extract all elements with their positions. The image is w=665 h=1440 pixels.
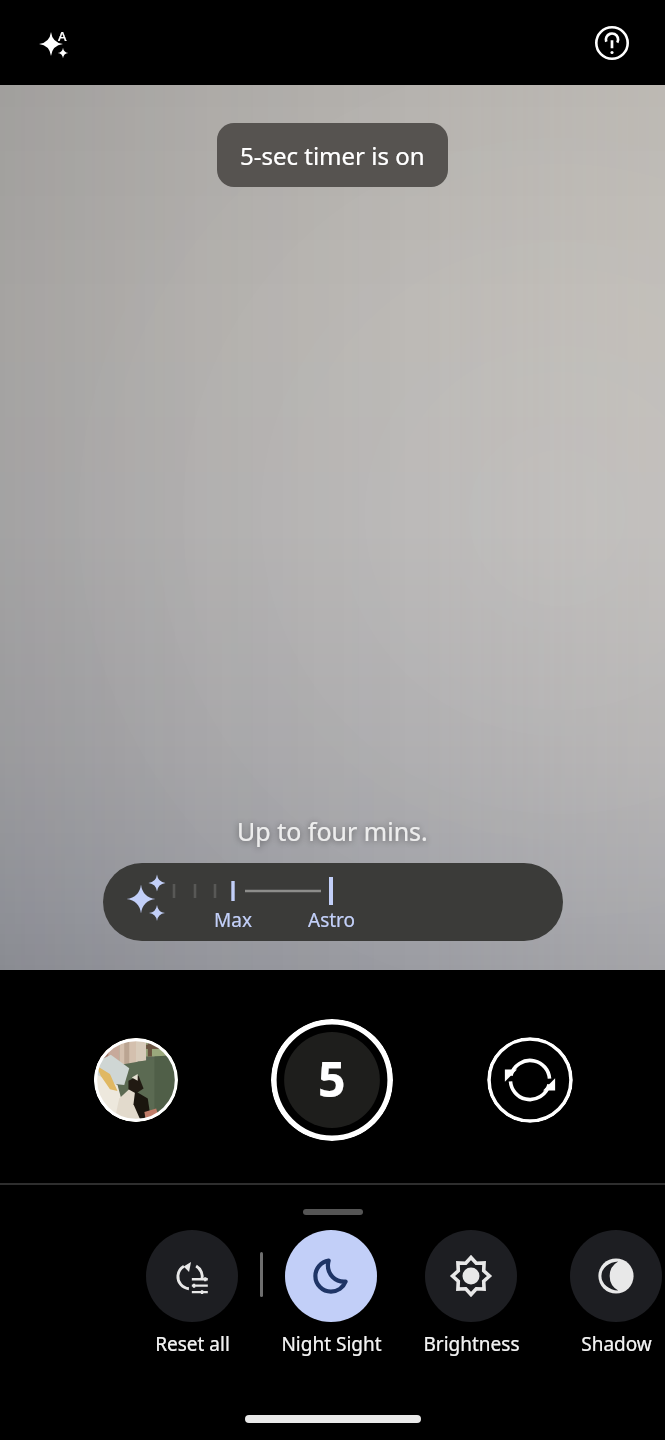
staticText: Brightness: [423, 1331, 520, 1357]
staticText: 5-sec timer is on: [240, 139, 425, 172]
staticText: Up to four mins.: [237, 814, 428, 848]
staticText: Night Sight: [281, 1331, 382, 1357]
button[interactable]: Help: [586, 17, 638, 69]
button[interactable]: Switch camera: [487, 1037, 573, 1123]
staticText: Shadow: [581, 1331, 652, 1357]
button[interactable]: Photo gallery: [94, 1038, 178, 1122]
button[interactable]: [425, 1230, 517, 1322]
staticText: A: [58, 27, 67, 45]
button[interactable]: Night Sight auto: [21, 13, 81, 73]
button[interactable]: Shutter: [271, 1019, 393, 1141]
staticText: Max: [214, 907, 252, 933]
button[interactable]: Max: [103, 863, 563, 941]
staticText: Reset all: [155, 1331, 230, 1357]
button[interactable]: [285, 1230, 377, 1322]
button[interactable]: 5-sec timer is on: [217, 123, 448, 187]
staticText: 5: [318, 1046, 346, 1111]
button[interactable]: [570, 1230, 662, 1322]
button[interactable]: [146, 1230, 238, 1322]
staticText: Astro: [308, 907, 356, 933]
